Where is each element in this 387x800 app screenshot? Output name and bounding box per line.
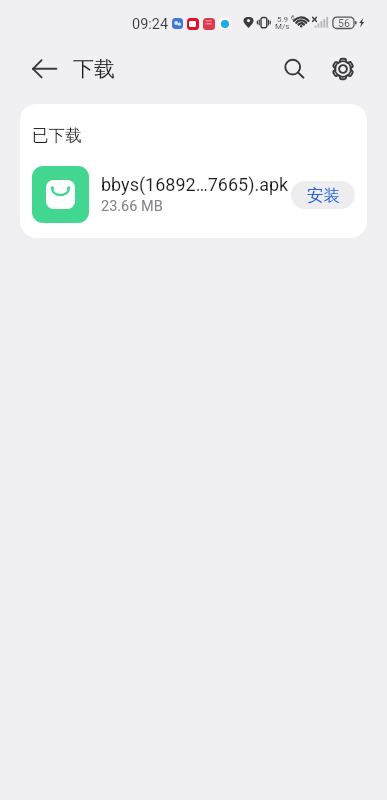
- button[interactable]: 安装: [291, 181, 355, 209]
- button[interactable]: Search: [275, 51, 310, 86]
- button[interactable]: bbys(16892…7665).apk: [20, 163, 367, 227]
- button[interactable]: Back: [27, 52, 61, 86]
- staticText: 5.9: [277, 15, 289, 24]
- staticText: 56: [338, 17, 350, 29]
- staticText: 6: [291, 14, 295, 22]
- staticText: 已下载: [32, 125, 82, 146]
- staticText: 安装: [307, 185, 340, 206]
- staticText: bbys(16892…7665).apk: [101, 174, 289, 195]
- staticText: M/s: [275, 22, 290, 31]
- button[interactable]: Settings: [325, 51, 360, 86]
- staticText: 23.66 MB: [101, 198, 163, 215]
- staticText: 09:24: [132, 16, 169, 33]
- staticText: 下载: [73, 56, 115, 82]
